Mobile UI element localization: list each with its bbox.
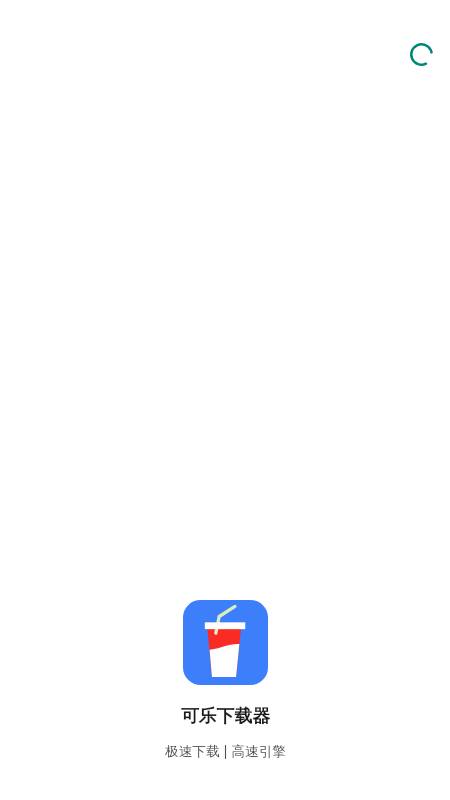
staticText: 极速下载 | 高速引擎 <box>165 741 286 760</box>
other: 可乐下载器 app icon <box>183 600 268 685</box>
staticText: 可乐下载器 <box>181 705 270 727</box>
other: Loading <box>410 43 433 66</box>
